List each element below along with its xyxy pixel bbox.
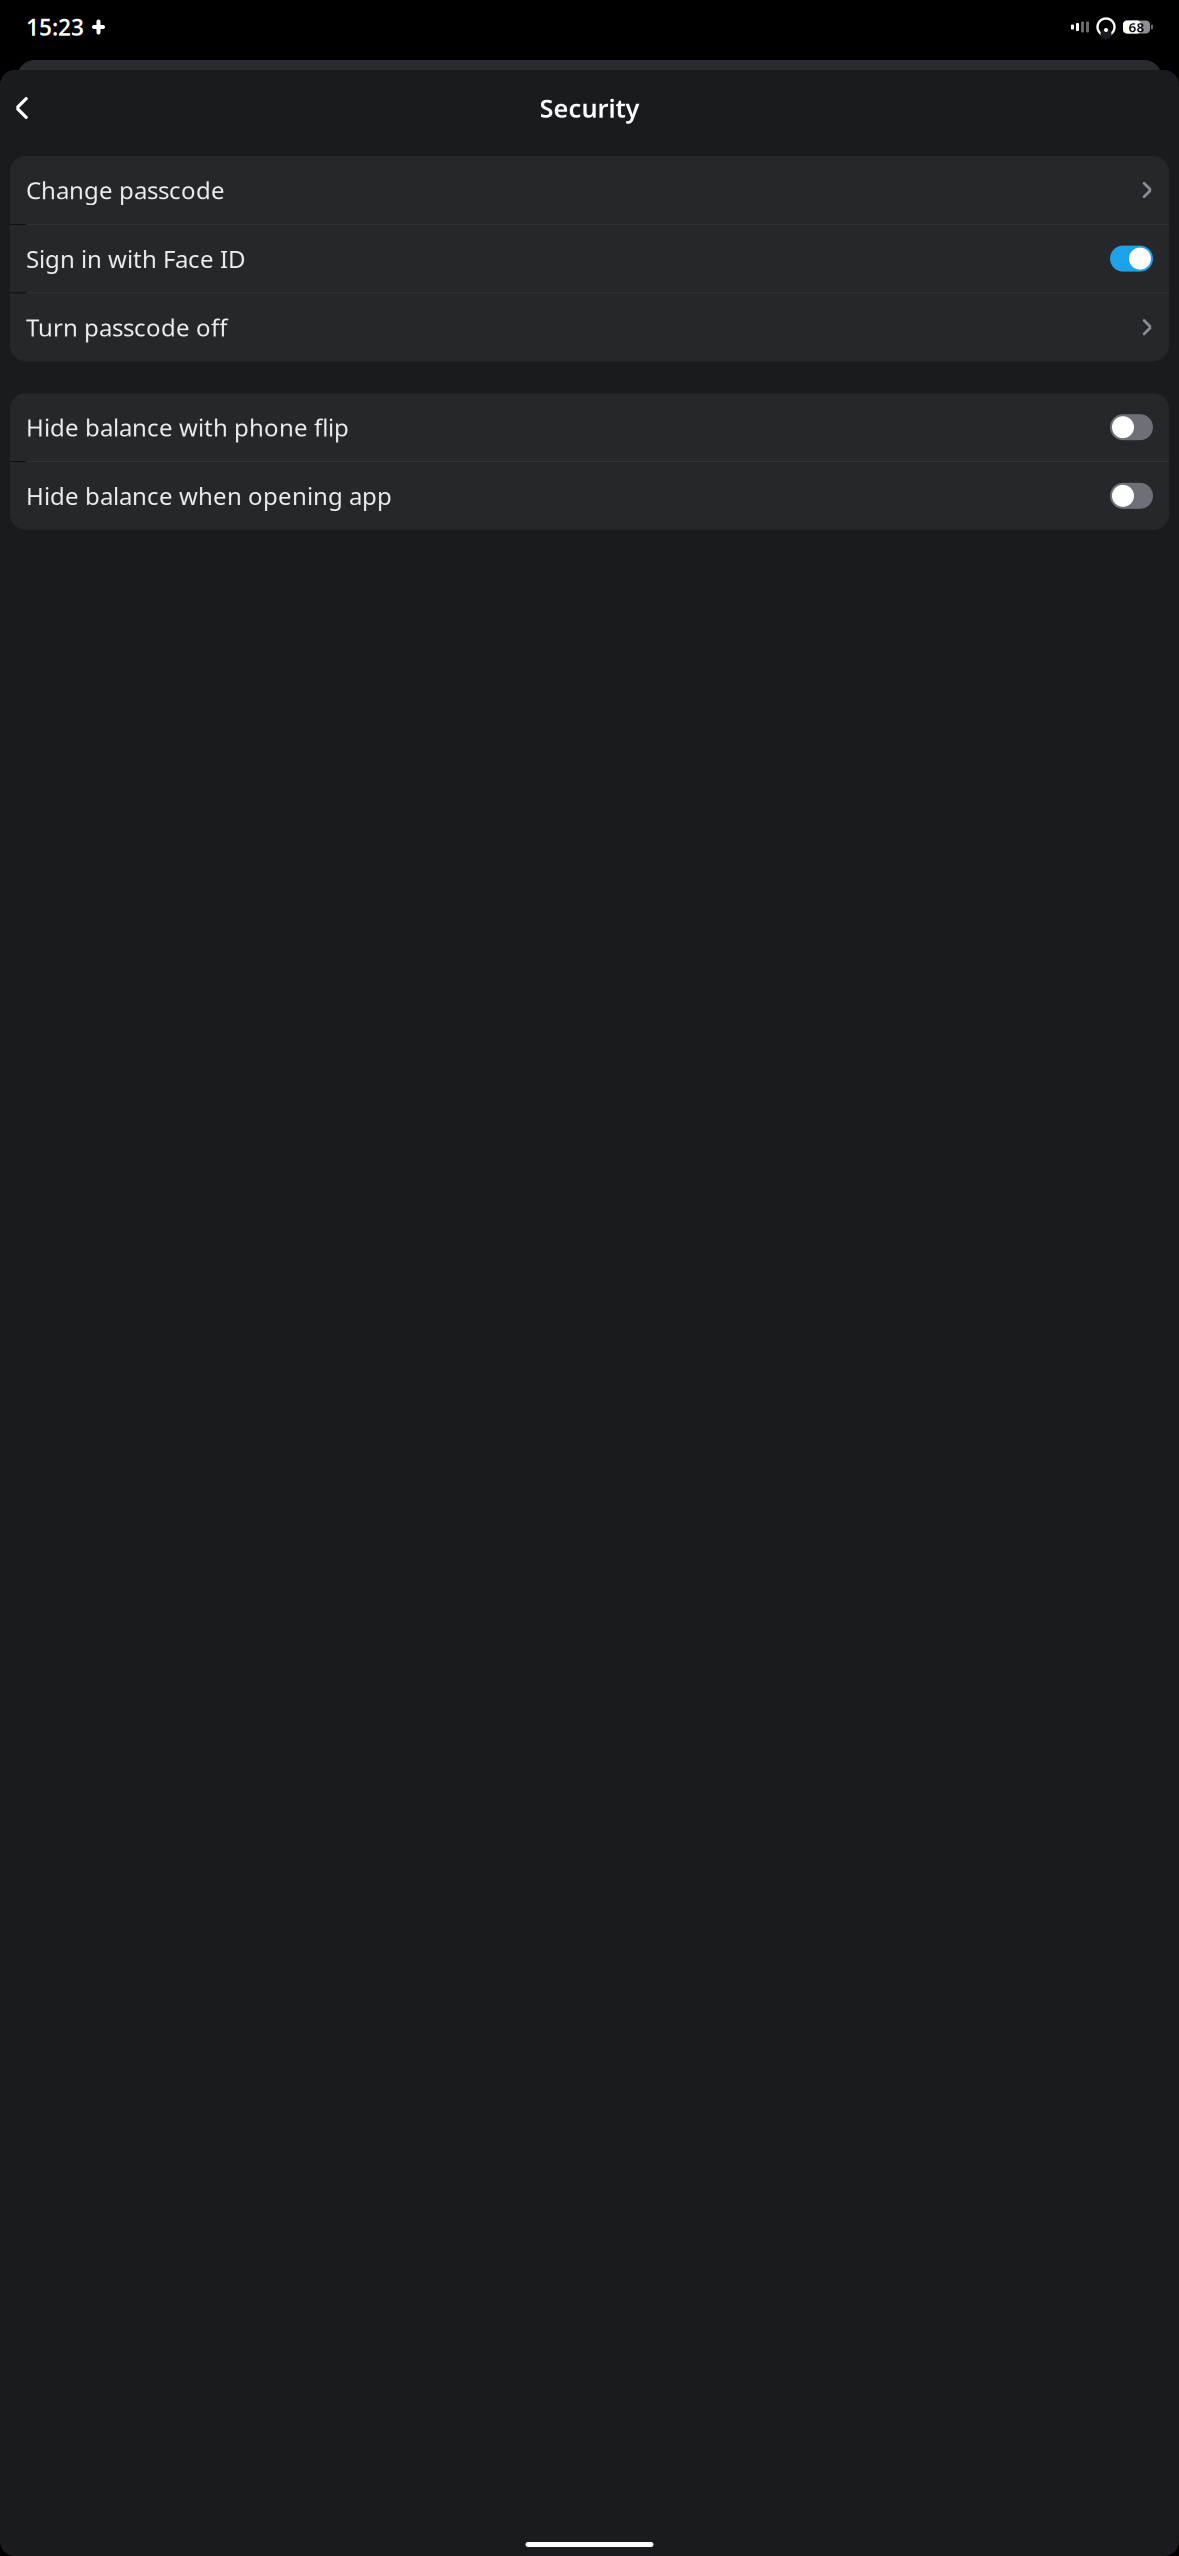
staticText: Hide balance when opening app [26,480,392,512]
button[interactable]: Back [0,83,44,133]
staticText: 68 [1128,18,1144,36]
button[interactable]: Change passcode [10,156,1169,224]
staticText: Change passcode [26,174,225,206]
staticText: Sign in with Face ID [26,243,246,275]
staticText: 15:23 [26,12,84,42]
staticText: Security [539,91,639,125]
staticText: Hide balance with phone flip [26,411,349,443]
button[interactable]: Hide balance with phone flip [10,393,1169,461]
button[interactable]: Hide balance when opening app [10,462,1169,530]
button[interactable]: Sign in with Face ID [10,225,1169,293]
button[interactable]: Turn passcode off [10,293,1169,361]
staticText: Turn passcode off [26,311,228,343]
